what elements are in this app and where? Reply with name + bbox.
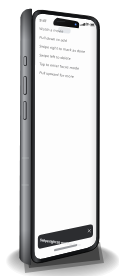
button[interactable]: Task list app phone mockup (0, 0, 119, 276)
